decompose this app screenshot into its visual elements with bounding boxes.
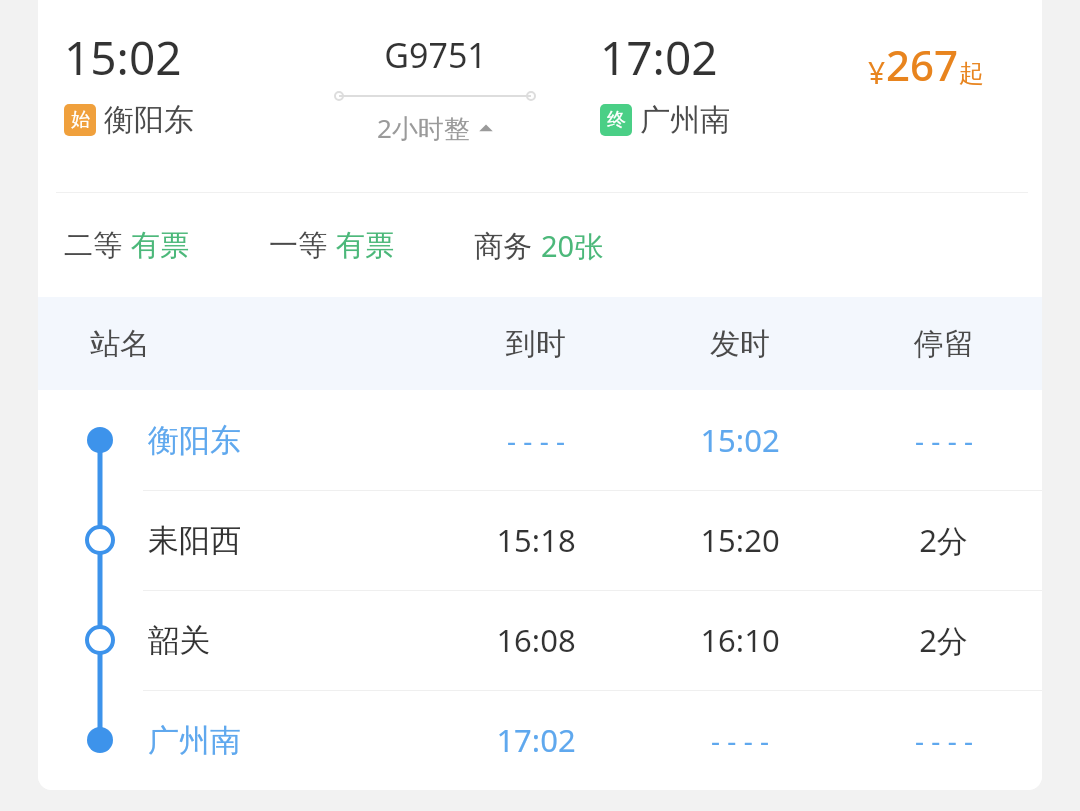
staticText: 有票 <box>336 227 394 264</box>
staticText: - - - - <box>915 421 973 459</box>
staticText: 267 <box>886 36 959 93</box>
staticText: 16:10 <box>700 619 780 661</box>
staticText: - - - - <box>507 421 565 459</box>
button[interactable]: 耒阳西 <box>38 490 1042 590</box>
staticText: 商务 <box>474 228 532 265</box>
staticText: 15:20 <box>700 519 780 561</box>
staticText: 发时 <box>710 325 770 363</box>
staticText: 15:02 <box>700 419 780 461</box>
staticText: G9751 <box>384 32 487 78</box>
staticText: 有票 <box>131 227 189 264</box>
staticText: 15:18 <box>496 519 576 561</box>
staticText: 17:02 <box>600 26 718 89</box>
staticText: 17:02 <box>496 719 576 761</box>
staticText: 起 <box>959 58 984 89</box>
staticText: 16:08 <box>496 619 576 661</box>
staticText: ¥ <box>868 52 886 93</box>
staticText: 停留 <box>914 325 974 363</box>
staticText: 广州南 <box>148 721 241 760</box>
staticText: 2分 <box>919 619 968 661</box>
staticText: 韶关 <box>148 621 210 660</box>
staticText: 2分 <box>919 519 968 561</box>
staticText: 站名 <box>90 325 150 363</box>
staticText: 衡阳东 <box>148 421 241 460</box>
button[interactable]: 韶关 <box>38 590 1042 690</box>
staticText: - - - - <box>711 721 769 759</box>
staticText: 到时 <box>506 325 566 363</box>
staticText: - - - - <box>915 721 973 759</box>
button[interactable]: 15:02 <box>38 0 1042 193</box>
staticText: 二等 <box>64 227 122 264</box>
staticText: 2小时整 <box>377 110 470 146</box>
button[interactable]: 二等 <box>38 194 1042 297</box>
staticText: 15:02 <box>64 26 182 89</box>
staticText: 衡阳东 <box>104 101 194 139</box>
staticText: 终 <box>607 108 626 132</box>
staticText: 广州南 <box>640 101 730 139</box>
button[interactable]: 衡阳东 <box>38 390 1042 490</box>
staticText: 耒阳西 <box>148 521 241 560</box>
button[interactable]: 广州南 <box>38 690 1042 790</box>
staticText: 20张 <box>541 226 604 266</box>
staticText: 始 <box>71 108 90 132</box>
staticText: 一等 <box>269 227 327 264</box>
